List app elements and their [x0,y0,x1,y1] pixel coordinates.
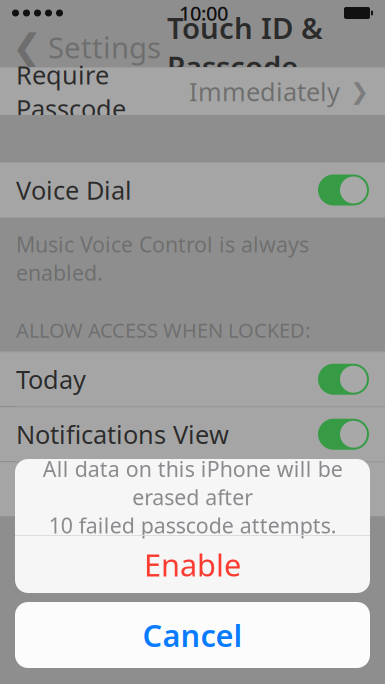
staticText: 10:00 [179,0,228,26]
staticText: All data on this iPhone will be erased a… [42,454,342,539]
staticText: Today [16,362,86,396]
staticText: Enable [144,544,241,585]
button[interactable]: Enable [15,536,370,593]
staticText: ❯ [350,79,369,104]
staticText: Immediately [189,75,340,108]
staticText: Cancel [142,615,242,655]
button[interactable]: Today [0,352,385,406]
staticText: ❮ [12,27,42,67]
staticText: ALLOW ACCESS WHEN LOCKED: [16,317,310,343]
staticText: Require Passcode [16,58,126,125]
staticText: Siri [16,472,54,506]
button[interactable]: Voice Dial [0,163,385,217]
button[interactable]: Cancel [15,602,370,668]
button[interactable]: Siri [0,462,385,516]
staticText: Notifications View [16,417,229,451]
staticText: Voice Dial [16,173,132,207]
staticText: Touch ID & Passcode [167,8,323,86]
staticText: Music Voice Control is always enabled. [16,230,309,287]
button[interactable]: ❮ [0,26,167,68]
button[interactable]: Notifications View [0,407,385,461]
button[interactable]: Require Passcode [0,68,385,115]
staticText: Settings [48,27,161,66]
